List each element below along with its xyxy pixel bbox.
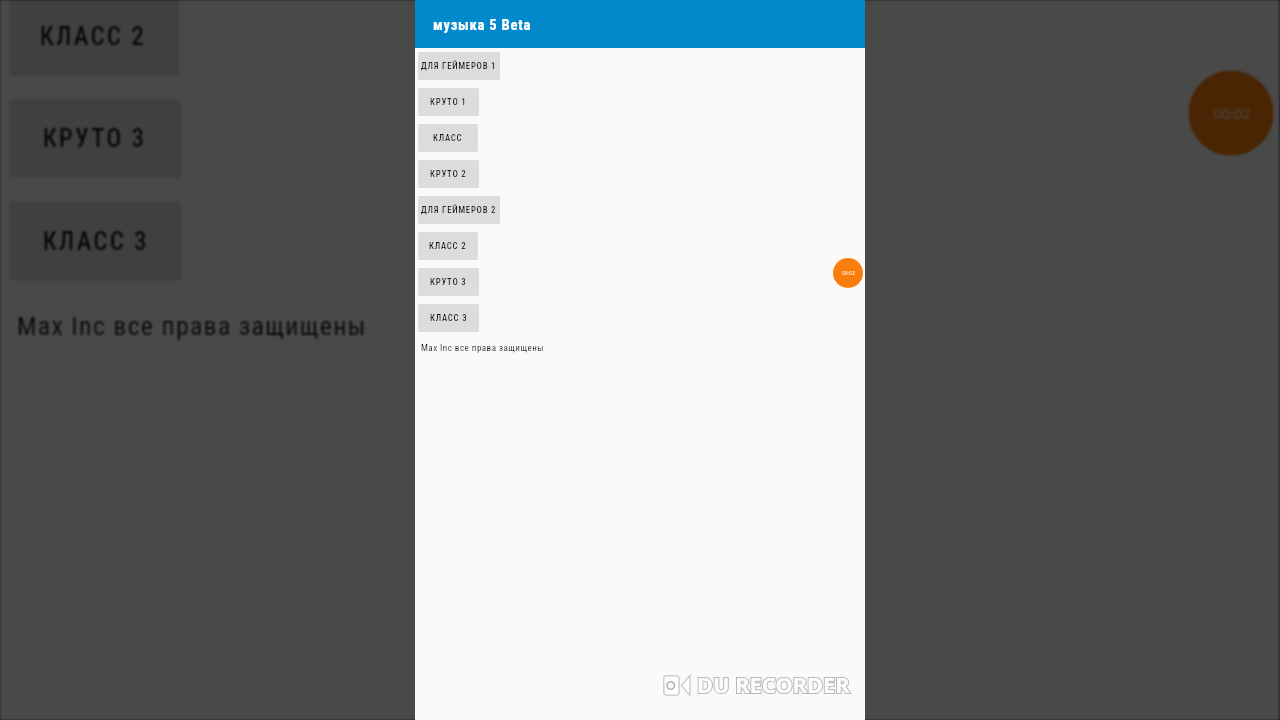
staticText: 00:02 — [1214, 105, 1251, 124]
button[interactable]: КРУТО 3 — [418, 268, 479, 296]
staticText: КЛАСС — [433, 133, 463, 143]
button[interactable]: КЛАСС 3 — [418, 304, 479, 332]
staticText: DU RECORDER — [697, 670, 850, 700]
staticText: КЛАСС 2 — [40, 22, 148, 51]
button[interactable]: КРУТО 2 — [418, 160, 479, 188]
button[interactable]: музыка 5 Beta — [415, 0, 865, 48]
button[interactable]: ДЛЯ ГЕЙМЕРОВ 1 — [418, 52, 500, 80]
button[interactable]: КЛАСС 2 — [418, 232, 478, 260]
staticText: КЛАСС 3 — [430, 313, 468, 323]
staticText: КРУТО 1 — [430, 97, 467, 107]
button[interactable]: ДЛЯ ГЕЙМЕРОВ 2 — [418, 196, 500, 224]
staticText: КЛАСС 3 — [43, 227, 151, 255]
button[interactable]: Recording timer — [833, 258, 863, 288]
staticText: DU RECORDER — [697, 670, 850, 700]
staticText: ДЛЯ ГЕЙМЕРОВ 1 — [421, 61, 497, 71]
staticText: 00:02 — [842, 270, 855, 277]
button[interactable]: КЛАСС — [418, 124, 478, 152]
staticText: КЛАСС 2 — [429, 241, 467, 251]
staticText: музыка 5 Beta — [433, 16, 532, 33]
staticText: КРУТО 2 — [430, 169, 467, 179]
staticText: ДЛЯ ГЕЙМЕРОВ 2 — [421, 205, 497, 215]
staticText: Max Inc все права защищены — [421, 343, 544, 354]
staticText: КРУТО 3 — [43, 124, 148, 153]
staticText: Max Inc все права защищены — [17, 312, 367, 343]
button[interactable]: КРУТО 1 — [418, 88, 479, 116]
staticText: КРУТО 3 — [430, 277, 467, 287]
